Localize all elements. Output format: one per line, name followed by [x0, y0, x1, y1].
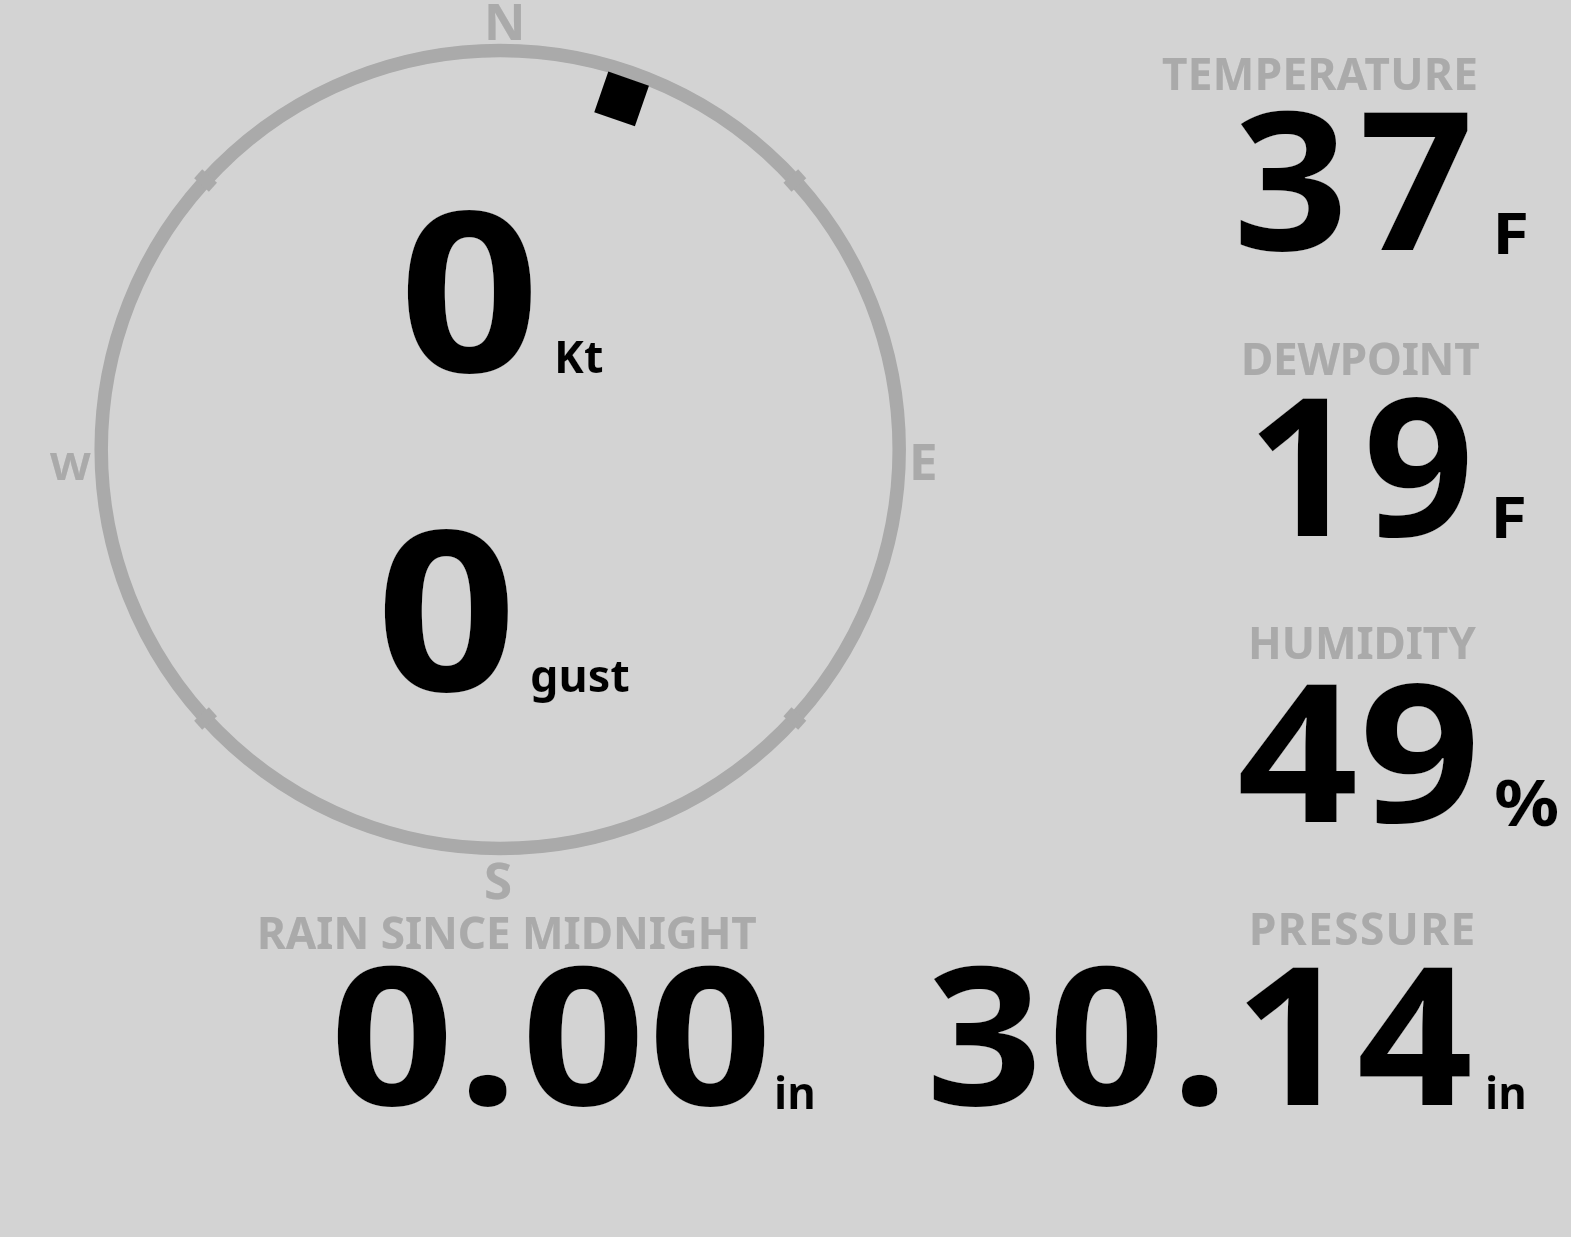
staticText: 0 [376, 453, 517, 757]
staticText: in [774, 1062, 816, 1122]
button[interactable]: Pressure 30.14 inches [900, 890, 1540, 1130]
staticText: Kt [554, 325, 604, 386]
staticText: gust [530, 644, 630, 705]
staticText: 37 [1233, 45, 1485, 307]
staticText: DEWPOINT [1241, 328, 1480, 388]
staticText: PRESSURE [1249, 898, 1477, 958]
staticText: 0.00 [330, 900, 776, 1162]
staticText: E [909, 425, 938, 494]
staticText: N [484, 0, 526, 54]
staticText: TEMPERATURE [1162, 43, 1479, 103]
staticText: 19 [1247, 331, 1480, 593]
staticText: W [50, 439, 91, 491]
button[interactable]: Wind compass, 0 knots, gusting 0 [80, 20, 930, 890]
staticText: 30.14 [926, 900, 1480, 1162]
staticText: % [1494, 758, 1559, 845]
staticText: 49 [1237, 617, 1482, 879]
button[interactable]: Temperature 37 degrees Fahrenheit [1150, 30, 1571, 290]
button[interactable]: Rain since midnight 0.00 inches [240, 890, 840, 1130]
staticText: in [1485, 1062, 1527, 1122]
button[interactable]: Dewpoint 19 degrees Fahrenheit [1150, 315, 1571, 580]
staticText: F [1490, 476, 1527, 555]
staticText: F [1492, 192, 1529, 271]
staticText: S [484, 844, 513, 913]
staticText: 0 [399, 134, 540, 438]
staticText: HUMIDITY [1248, 612, 1476, 672]
button[interactable]: Humidity 49 percent [1150, 600, 1571, 865]
staticText: RAIN SINCE MIDNIGHT [257, 902, 757, 962]
